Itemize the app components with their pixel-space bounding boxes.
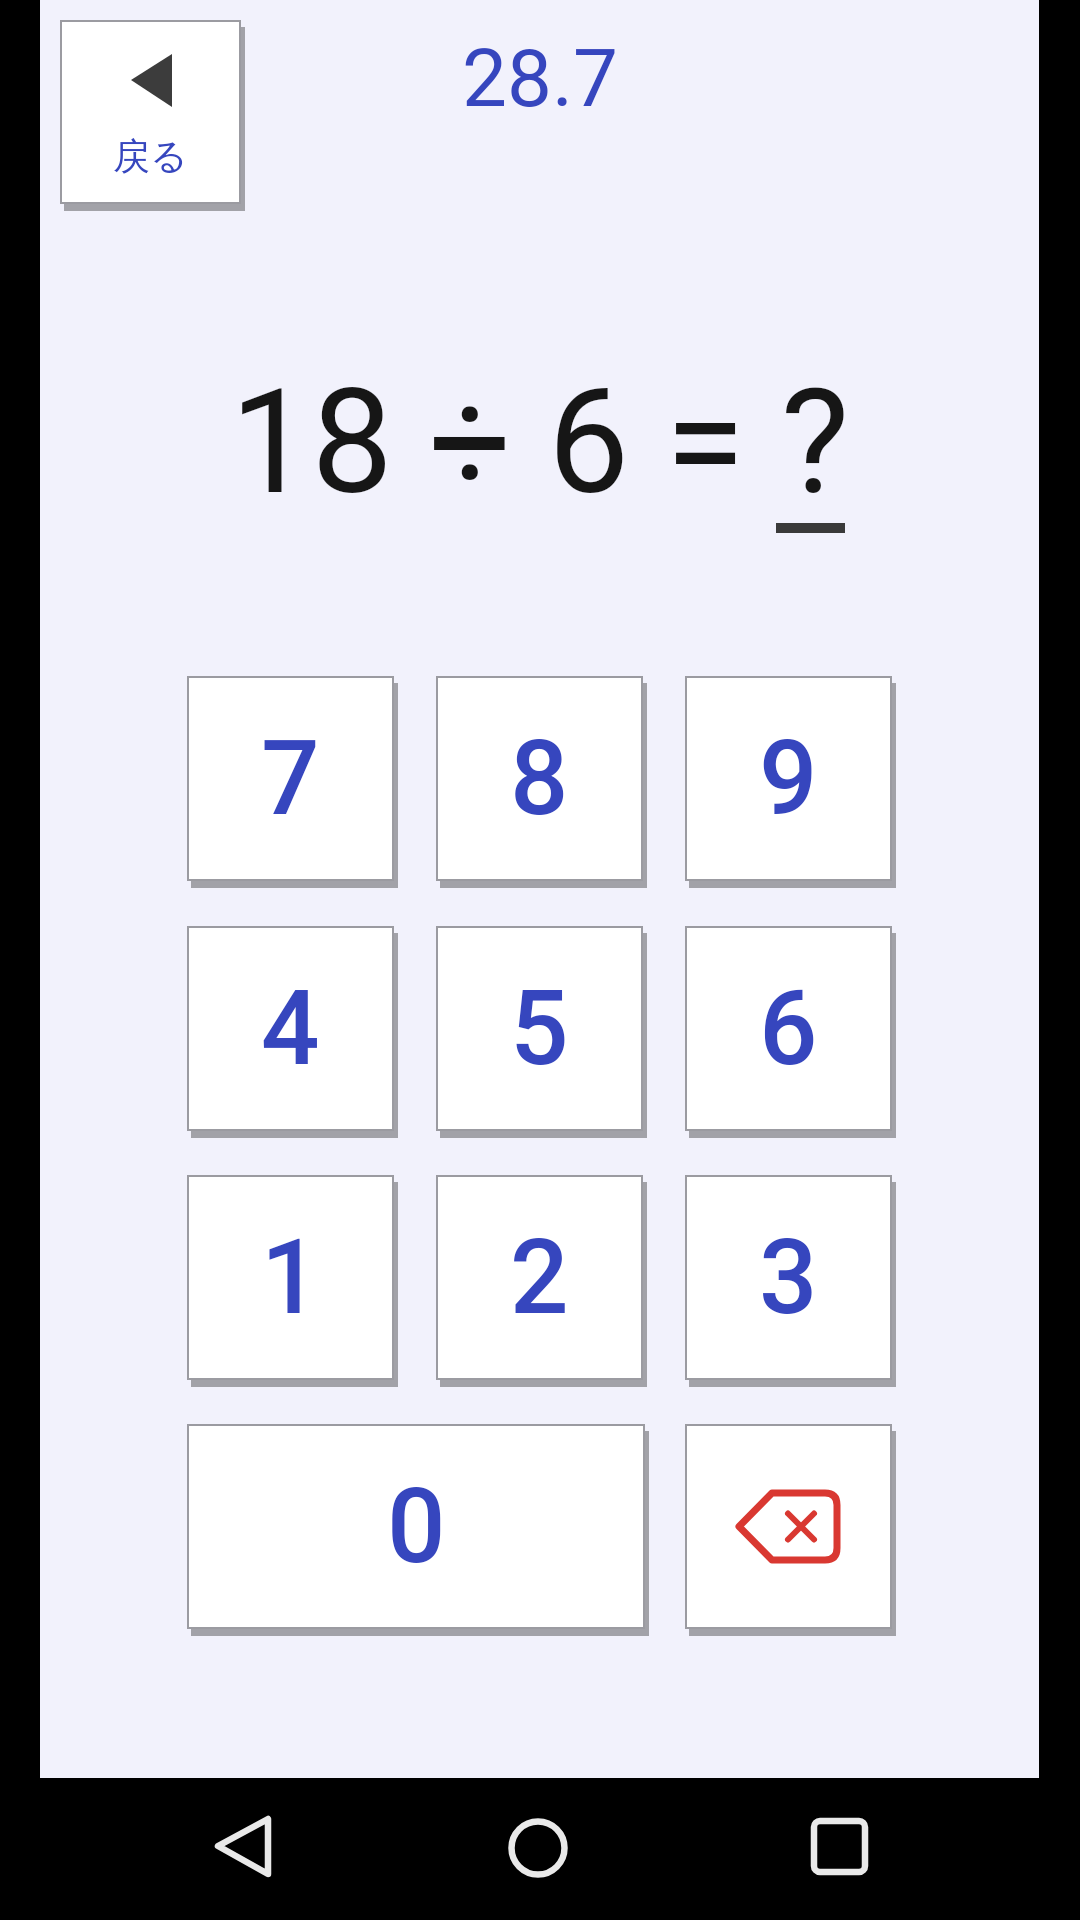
button[interactable]: 9 (685, 676, 892, 881)
staticText: 18 ÷ 6 = ? (230, 357, 850, 527)
button[interactable] (685, 1424, 892, 1629)
button[interactable]: 7 (187, 676, 394, 881)
staticText: 6 (759, 968, 818, 1089)
button[interactable]: 8 (436, 676, 643, 881)
staticText: 28.7 (462, 32, 618, 126)
staticText: 3 (759, 1217, 818, 1338)
button[interactable]: 戻る (60, 20, 241, 204)
staticText: 1 (261, 1217, 320, 1338)
staticText: 4 (261, 968, 320, 1089)
staticText: 5 (510, 968, 569, 1089)
staticText: 2 (510, 1217, 569, 1338)
button[interactable] (780, 1786, 900, 1906)
button[interactable]: 5 (436, 926, 643, 1131)
button[interactable]: 3 (685, 1175, 892, 1380)
staticText: 9 (759, 718, 818, 839)
staticText: 戻る (113, 133, 188, 180)
staticText: 8 (510, 718, 569, 839)
button[interactable] (478, 1786, 598, 1906)
button[interactable]: 4 (187, 926, 394, 1131)
button[interactable] (183, 1786, 303, 1906)
staticText: 0 (387, 1466, 446, 1587)
button[interactable]: 1 (187, 1175, 394, 1380)
button[interactable]: 2 (436, 1175, 643, 1380)
button[interactable]: 6 (685, 926, 892, 1131)
staticText: 7 (261, 718, 320, 839)
button[interactable]: 0 (187, 1424, 645, 1629)
